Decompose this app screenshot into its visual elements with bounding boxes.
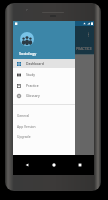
- button[interactable]: Back: [23, 161, 31, 169]
- button[interactable]: App Version: [13, 120, 75, 131]
- staticText: PRACTICE: [76, 46, 92, 51]
- staticText: Glossary: [26, 93, 40, 98]
- button[interactable]: Recent apps: [76, 161, 84, 169]
- button[interactable]: More options: [85, 31, 92, 38]
- button[interactable]: Home: [50, 161, 58, 169]
- button[interactable]: [13, 21, 94, 175]
- staticText: General: [17, 113, 30, 117]
- button[interactable]: Upgrade: [13, 130, 75, 141]
- staticText: Study: [26, 72, 35, 77]
- staticText: Sociology: [19, 51, 37, 56]
- button[interactable]: Dashboard: [13, 59, 75, 68]
- button[interactable]: Glossary: [13, 90, 75, 101]
- staticText: Practice: [26, 83, 39, 88]
- staticText: Upgrade: [17, 134, 31, 138]
- button[interactable]: PRACTICE: [76, 46, 92, 51]
- staticText: App Version: [17, 124, 36, 128]
- staticText: Dashboard: [26, 61, 44, 66]
- button[interactable]: Practice: [13, 80, 75, 91]
- button[interactable]: Study: [13, 69, 75, 80]
- button[interactable]: General: [13, 109, 75, 120]
